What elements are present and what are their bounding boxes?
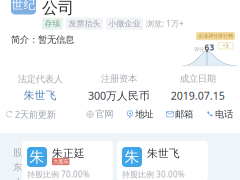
staticText: 邮箱 (175, 108, 193, 120)
button[interactable]: 地址 (125, 106, 154, 122)
button[interactable]: 2天前更新 (6, 106, 56, 122)
staticText: 朱世飞 (147, 147, 180, 160)
staticText: 2 (15, 176, 20, 180)
staticText: 持股比例 70.00% (27, 169, 90, 180)
button[interactable]: 官网 (85, 106, 114, 122)
staticText: 官网 (95, 108, 113, 120)
staticText: 存续 (44, 19, 60, 28)
staticText: 公司 (42, 0, 74, 18)
staticText: 朱 (29, 148, 44, 166)
staticText: 东 (13, 161, 22, 173)
staticText: 地址 (135, 108, 153, 120)
staticText: 企业评分排行榜 (198, 33, 233, 39)
staticText: 朱世飞 (24, 89, 57, 102)
staticText: 2天前更新 (15, 108, 56, 120)
staticText: 成立日期 (180, 73, 216, 84)
staticText: 注册资本 (101, 73, 137, 84)
staticText: 63 (204, 42, 214, 53)
button[interactable]: 朱 (117, 141, 208, 180)
staticText: 2019.07.15 (171, 88, 225, 103)
button[interactable]: 朱 (22, 141, 113, 180)
staticText: 浏览: 1万+ (146, 18, 184, 29)
staticText: 持股比例 30.00% (122, 169, 185, 180)
staticText: 股 (13, 147, 22, 158)
button[interactable]: 邮箱 (165, 106, 194, 122)
staticText: 发票抬头 (68, 19, 100, 28)
staticText: 世纪 (11, 0, 35, 12)
staticText: 朱 (124, 148, 139, 166)
staticText: 评分 (194, 46, 204, 53)
staticText: 电话 (215, 108, 233, 120)
staticText: 简介：暂无信息 (11, 34, 74, 45)
staticText: 300万人民币 (88, 88, 150, 103)
staticText: 朱正廷 (52, 147, 85, 160)
button[interactable]: 电话 (205, 106, 234, 122)
staticText: 法定代表人 (18, 73, 63, 85)
staticText: +3 (222, 42, 228, 49)
staticText: 小微企业 (108, 19, 140, 28)
staticText: 大股东 (53, 158, 68, 165)
